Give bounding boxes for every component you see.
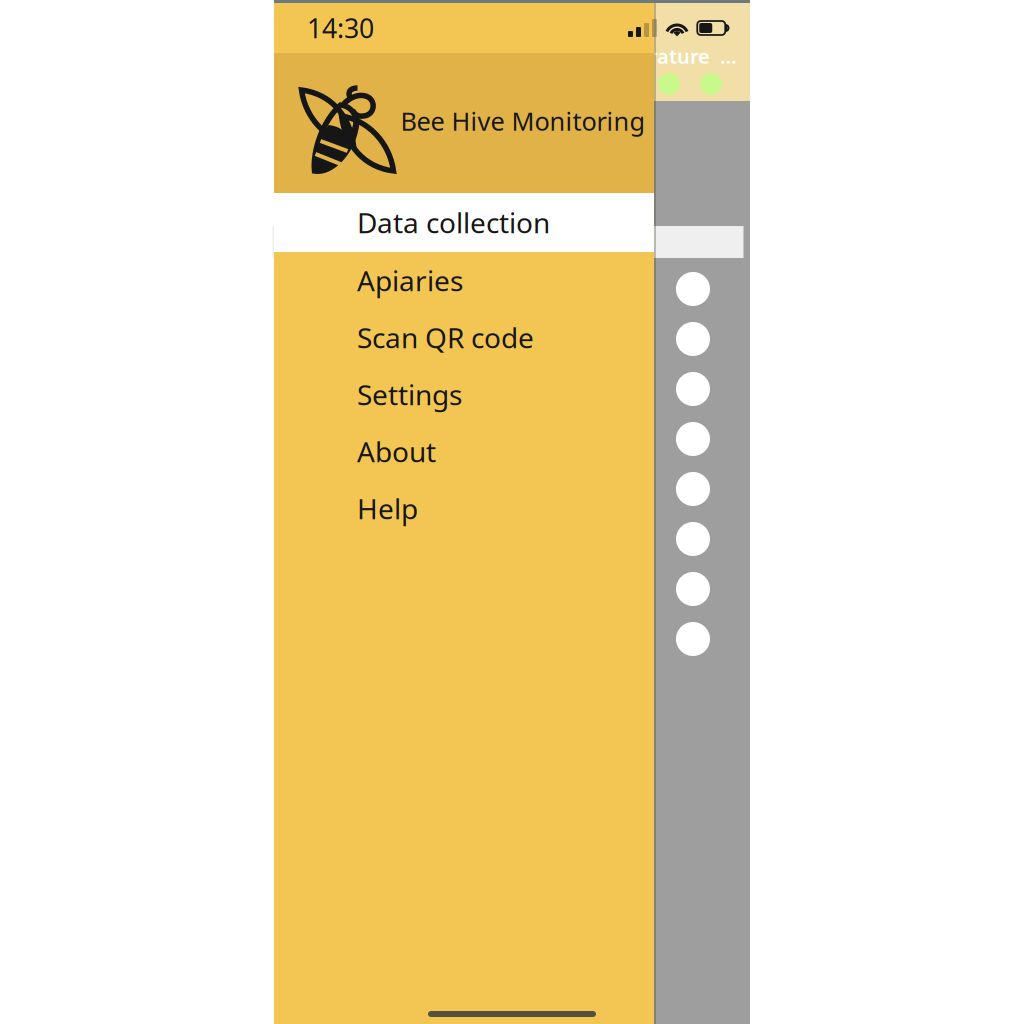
button[interactable]: About [274,423,654,480]
staticText: Scan QR code [357,319,534,356]
staticText: About [357,433,436,470]
staticText: Help [357,490,418,527]
staticText: Data collection [357,204,550,241]
staticText: Temperature Humidity [583,43,743,69]
staticText: Bee Hive Monitoring [400,104,645,138]
button[interactable]: Data collection [274,193,654,252]
button[interactable]: Scan QR code [274,309,654,366]
button[interactable]: Settings [274,366,654,423]
staticText: Settings [357,376,462,413]
button[interactable]: Apiaries [274,252,654,309]
staticText: 14:30 [307,10,374,46]
staticText: Apiaries [357,262,463,299]
button[interactable]: Help [274,480,654,537]
